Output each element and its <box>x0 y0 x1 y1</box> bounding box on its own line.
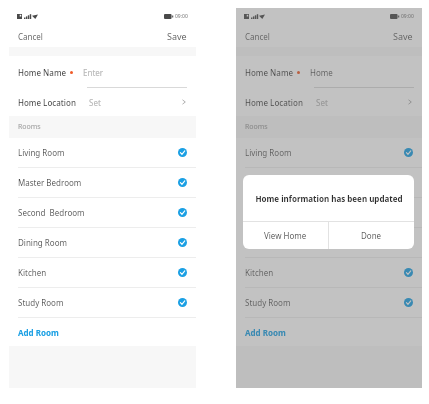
button[interactable]: Save <box>158 26 196 46</box>
staticText: Home information has been updated <box>255 193 403 204</box>
staticText: Kitchen <box>245 267 274 278</box>
staticText: Home <box>310 67 333 78</box>
staticText: Second Bedroom <box>18 207 85 218</box>
button[interactable]: Done <box>329 222 414 249</box>
staticText: Enter <box>83 67 104 78</box>
staticText: Kitchen <box>18 267 47 278</box>
staticText: Living Room <box>18 147 65 158</box>
button[interactable]: Dining Room <box>9 228 196 257</box>
staticText: Set <box>89 97 101 108</box>
staticText: Study Room <box>18 297 64 308</box>
staticText: Done <box>361 230 382 241</box>
staticText: Add Room <box>245 327 286 338</box>
staticText: Master Bedroom <box>18 177 82 188</box>
staticText: Save <box>393 30 413 42</box>
button[interactable]: Kitchen <box>236 258 422 287</box>
staticText: Living Room <box>245 147 292 158</box>
button[interactable]: Master Bedroom <box>236 168 422 197</box>
staticText: 09:00 <box>401 13 414 20</box>
button[interactable]: Dining Room <box>236 228 422 257</box>
staticText: Home Location <box>18 97 76 108</box>
button[interactable]: Study Room <box>236 288 422 317</box>
button[interactable]: Home Location <box>236 88 422 116</box>
button[interactable]: Home Name <box>9 56 196 88</box>
staticText: Home Name <box>18 67 67 78</box>
button[interactable]: Living Room <box>236 138 422 167</box>
button[interactable]: Study Room <box>9 288 196 317</box>
button[interactable]: Living Room <box>9 138 196 167</box>
button[interactable]: Add Room <box>236 318 422 346</box>
button[interactable]: Kitchen <box>9 258 196 287</box>
other: Open location picker <box>181 99 187 105</box>
staticText: Dining Room <box>245 237 294 248</box>
button[interactable]: Add Room <box>9 318 196 346</box>
staticText: Home Location <box>245 97 303 108</box>
staticText: Set <box>316 97 328 108</box>
staticText: Add Room <box>18 327 59 338</box>
staticText: Study Room <box>245 297 291 308</box>
button[interactable]: Master Bedroom <box>9 168 196 197</box>
button[interactable]: Second Bedroom <box>9 198 196 227</box>
staticText: Rooms <box>18 122 41 132</box>
button[interactable]: Home Location <box>9 88 196 116</box>
button[interactable]: View Home <box>243 222 328 249</box>
button[interactable]: Home Name <box>236 56 422 88</box>
staticText: View Home <box>264 230 307 241</box>
button[interactable]: Cancel <box>9 27 52 46</box>
button[interactable]: Cancel <box>236 27 279 46</box>
staticText: Dining Room <box>18 237 67 248</box>
staticText: 09:00 <box>175 13 188 20</box>
button[interactable]: Second Bedroom <box>236 198 422 227</box>
staticText: Cancel <box>245 31 270 42</box>
staticText: Home Name <box>245 67 294 78</box>
staticText: Cancel <box>18 31 43 42</box>
staticText: Save <box>167 30 187 42</box>
other: Open location picker <box>407 99 413 105</box>
staticText: Rooms <box>245 122 268 132</box>
button[interactable]: Save <box>384 26 422 46</box>
